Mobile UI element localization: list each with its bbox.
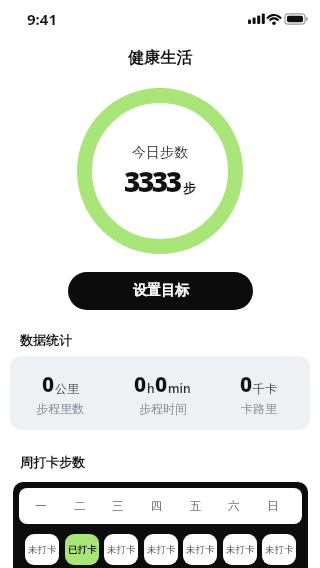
button[interactable]: 未打卡 [223, 534, 257, 565]
staticText: 周打卡步数 [20, 454, 85, 470]
staticText: min [168, 380, 191, 396]
staticText: 未打卡 [107, 544, 136, 556]
staticText: 0 [155, 370, 168, 399]
staticText: 日 [267, 499, 279, 513]
staticText: 公里 [55, 381, 79, 396]
staticText: 设置目标 [133, 282, 189, 300]
staticText: 未打卡 [226, 544, 255, 556]
button[interactable]: 未打卡 [262, 534, 296, 565]
staticText: 卡路里 [241, 401, 277, 416]
staticText: 二 [74, 499, 86, 513]
button[interactable]: 未打卡 [144, 534, 178, 565]
staticText: 五 [190, 499, 202, 513]
staticText: 六 [228, 499, 240, 513]
staticText: 0 [42, 370, 55, 399]
staticText: h [147, 380, 155, 396]
staticText: 0 [240, 370, 253, 399]
staticText: 四 [151, 499, 163, 513]
staticText: 3333 [124, 162, 180, 200]
button[interactable]: 未打卡 [25, 534, 59, 565]
staticText: 未打卡 [186, 544, 215, 556]
staticText: 步程时间 [139, 401, 187, 416]
staticText: 未打卡 [265, 544, 294, 556]
staticText: 步 [183, 180, 196, 196]
staticText: 数据统计 [20, 332, 72, 348]
staticText: 已打卡 [68, 544, 97, 556]
staticText: 今日步数 [132, 144, 188, 162]
button[interactable]: 已打卡 [65, 534, 99, 565]
button[interactable]: 0 [10, 356, 310, 430]
staticText: 三 [112, 499, 124, 513]
staticText: 健康生活 [128, 48, 192, 68]
staticText: 步程里数 [36, 401, 84, 416]
staticText: 未打卡 [28, 544, 57, 556]
button[interactable]: 未打卡 [104, 534, 138, 565]
staticText: 0 [134, 370, 147, 399]
staticText: 一 [35, 499, 47, 513]
staticText: 未打卡 [147, 544, 176, 556]
staticText: 9:41 [27, 9, 57, 29]
button[interactable]: 设置目标 [68, 272, 253, 310]
button[interactable]: 未打卡 [183, 534, 217, 565]
staticText: 千卡 [253, 381, 277, 396]
